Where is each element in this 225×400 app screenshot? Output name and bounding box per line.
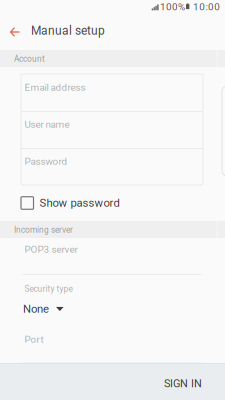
staticText: Security type	[24, 284, 72, 294]
staticText: Port	[24, 333, 43, 345]
staticText: POP3 server	[24, 243, 77, 255]
staticText: Incoming server	[14, 225, 73, 235]
staticText: Account	[14, 54, 45, 64]
staticText: Email address	[24, 81, 85, 93]
button[interactable]: Show password	[21, 193, 141, 213]
button[interactable]: None	[23, 302, 83, 316]
staticText: SIGN IN	[164, 377, 202, 390]
staticText: Manual setup	[31, 23, 105, 38]
staticText: 10:00	[193, 1, 220, 13]
staticText: None	[23, 302, 49, 316]
staticText: User name	[24, 118, 69, 130]
staticText: Password	[24, 155, 67, 167]
button[interactable]: Back	[0, 17, 30, 47]
staticText: 100%	[160, 1, 185, 13]
button[interactable]: SIGN IN	[152, 367, 214, 400]
staticText: Show password	[39, 196, 119, 210]
